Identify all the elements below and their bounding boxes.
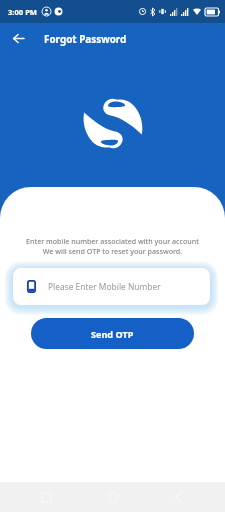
staticText: Forgot Password (44, 32, 127, 45)
staticText: 3:00 PM (8, 7, 38, 17)
button[interactable]: Send OTP (31, 318, 194, 349)
staticText: Enter mobile number associated with your… (0, 236, 225, 246)
staticText: We will send OTP to reset your password. (0, 246, 225, 256)
button[interactable]: Please Enter Mobile Number (13, 268, 210, 305)
button[interactable]: Back (8, 21, 28, 55)
staticText: Send OTP (91, 328, 134, 340)
staticText: Please Enter Mobile Number (48, 281, 161, 292)
